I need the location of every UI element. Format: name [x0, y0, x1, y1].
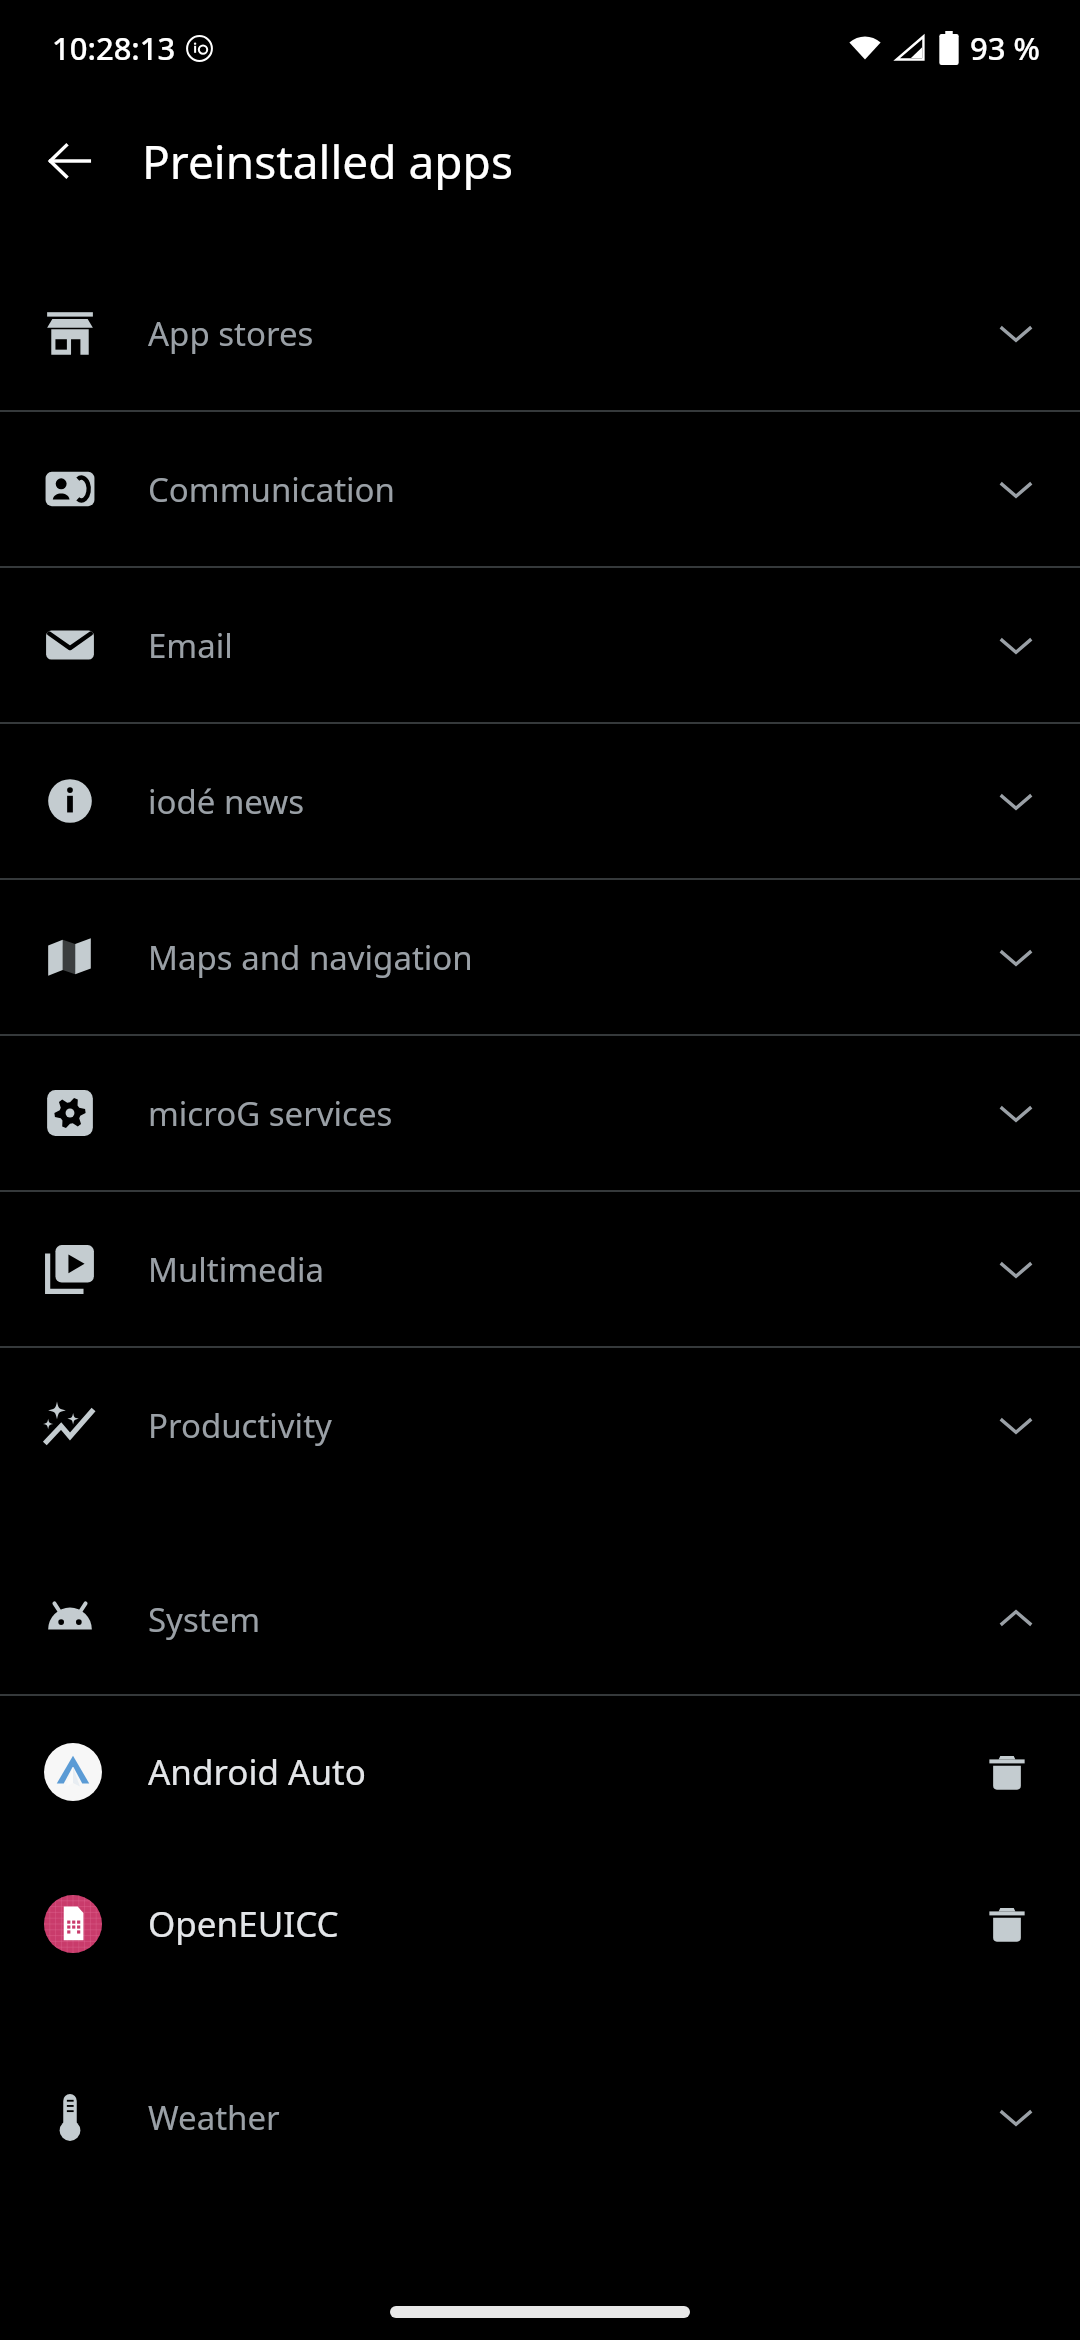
button[interactable]: Maps and navigation — [0, 880, 1080, 1034]
button[interactable]: iodé news — [0, 724, 1080, 878]
staticText: 93 % — [970, 27, 1040, 69]
button[interactable]: Uninstall OpenEUICC — [978, 1895, 1036, 1953]
staticText: Preinstalled apps — [142, 130, 513, 193]
staticText: Productivity — [148, 1403, 996, 1448]
staticText: App stores — [148, 311, 996, 356]
staticText: Email — [148, 623, 996, 668]
staticText: Multimedia — [148, 1247, 996, 1292]
button[interactable]: OpenEUICC — [0, 1848, 1080, 2000]
button[interactable]: App stores — [0, 256, 1080, 410]
button[interactable]: Android Auto — [0, 1696, 1080, 1848]
button[interactable]: System — [0, 1544, 1080, 1694]
button[interactable]: Multimedia — [0, 1192, 1080, 1346]
staticText: Maps and navigation — [148, 935, 996, 980]
staticText: Communication — [148, 467, 996, 512]
button[interactable]: Productivity — [0, 1348, 1080, 1502]
button[interactable]: Uninstall Android Auto — [978, 1743, 1036, 1801]
button[interactable]: Back — [34, 125, 106, 197]
staticText: OpenEUICC — [148, 1900, 978, 1948]
staticText: iodé news — [148, 779, 996, 824]
button[interactable]: microG services — [0, 1036, 1080, 1190]
staticText: 10:28:13 — [52, 27, 176, 69]
staticText: microG services — [148, 1091, 996, 1136]
staticText: System — [148, 1597, 996, 1642]
button[interactable]: Weather — [0, 2042, 1080, 2192]
staticText: Android Auto — [148, 1748, 978, 1796]
button[interactable]: Email — [0, 568, 1080, 722]
staticText: Weather — [148, 2095, 996, 2140]
button[interactable]: Communication — [0, 412, 1080, 566]
